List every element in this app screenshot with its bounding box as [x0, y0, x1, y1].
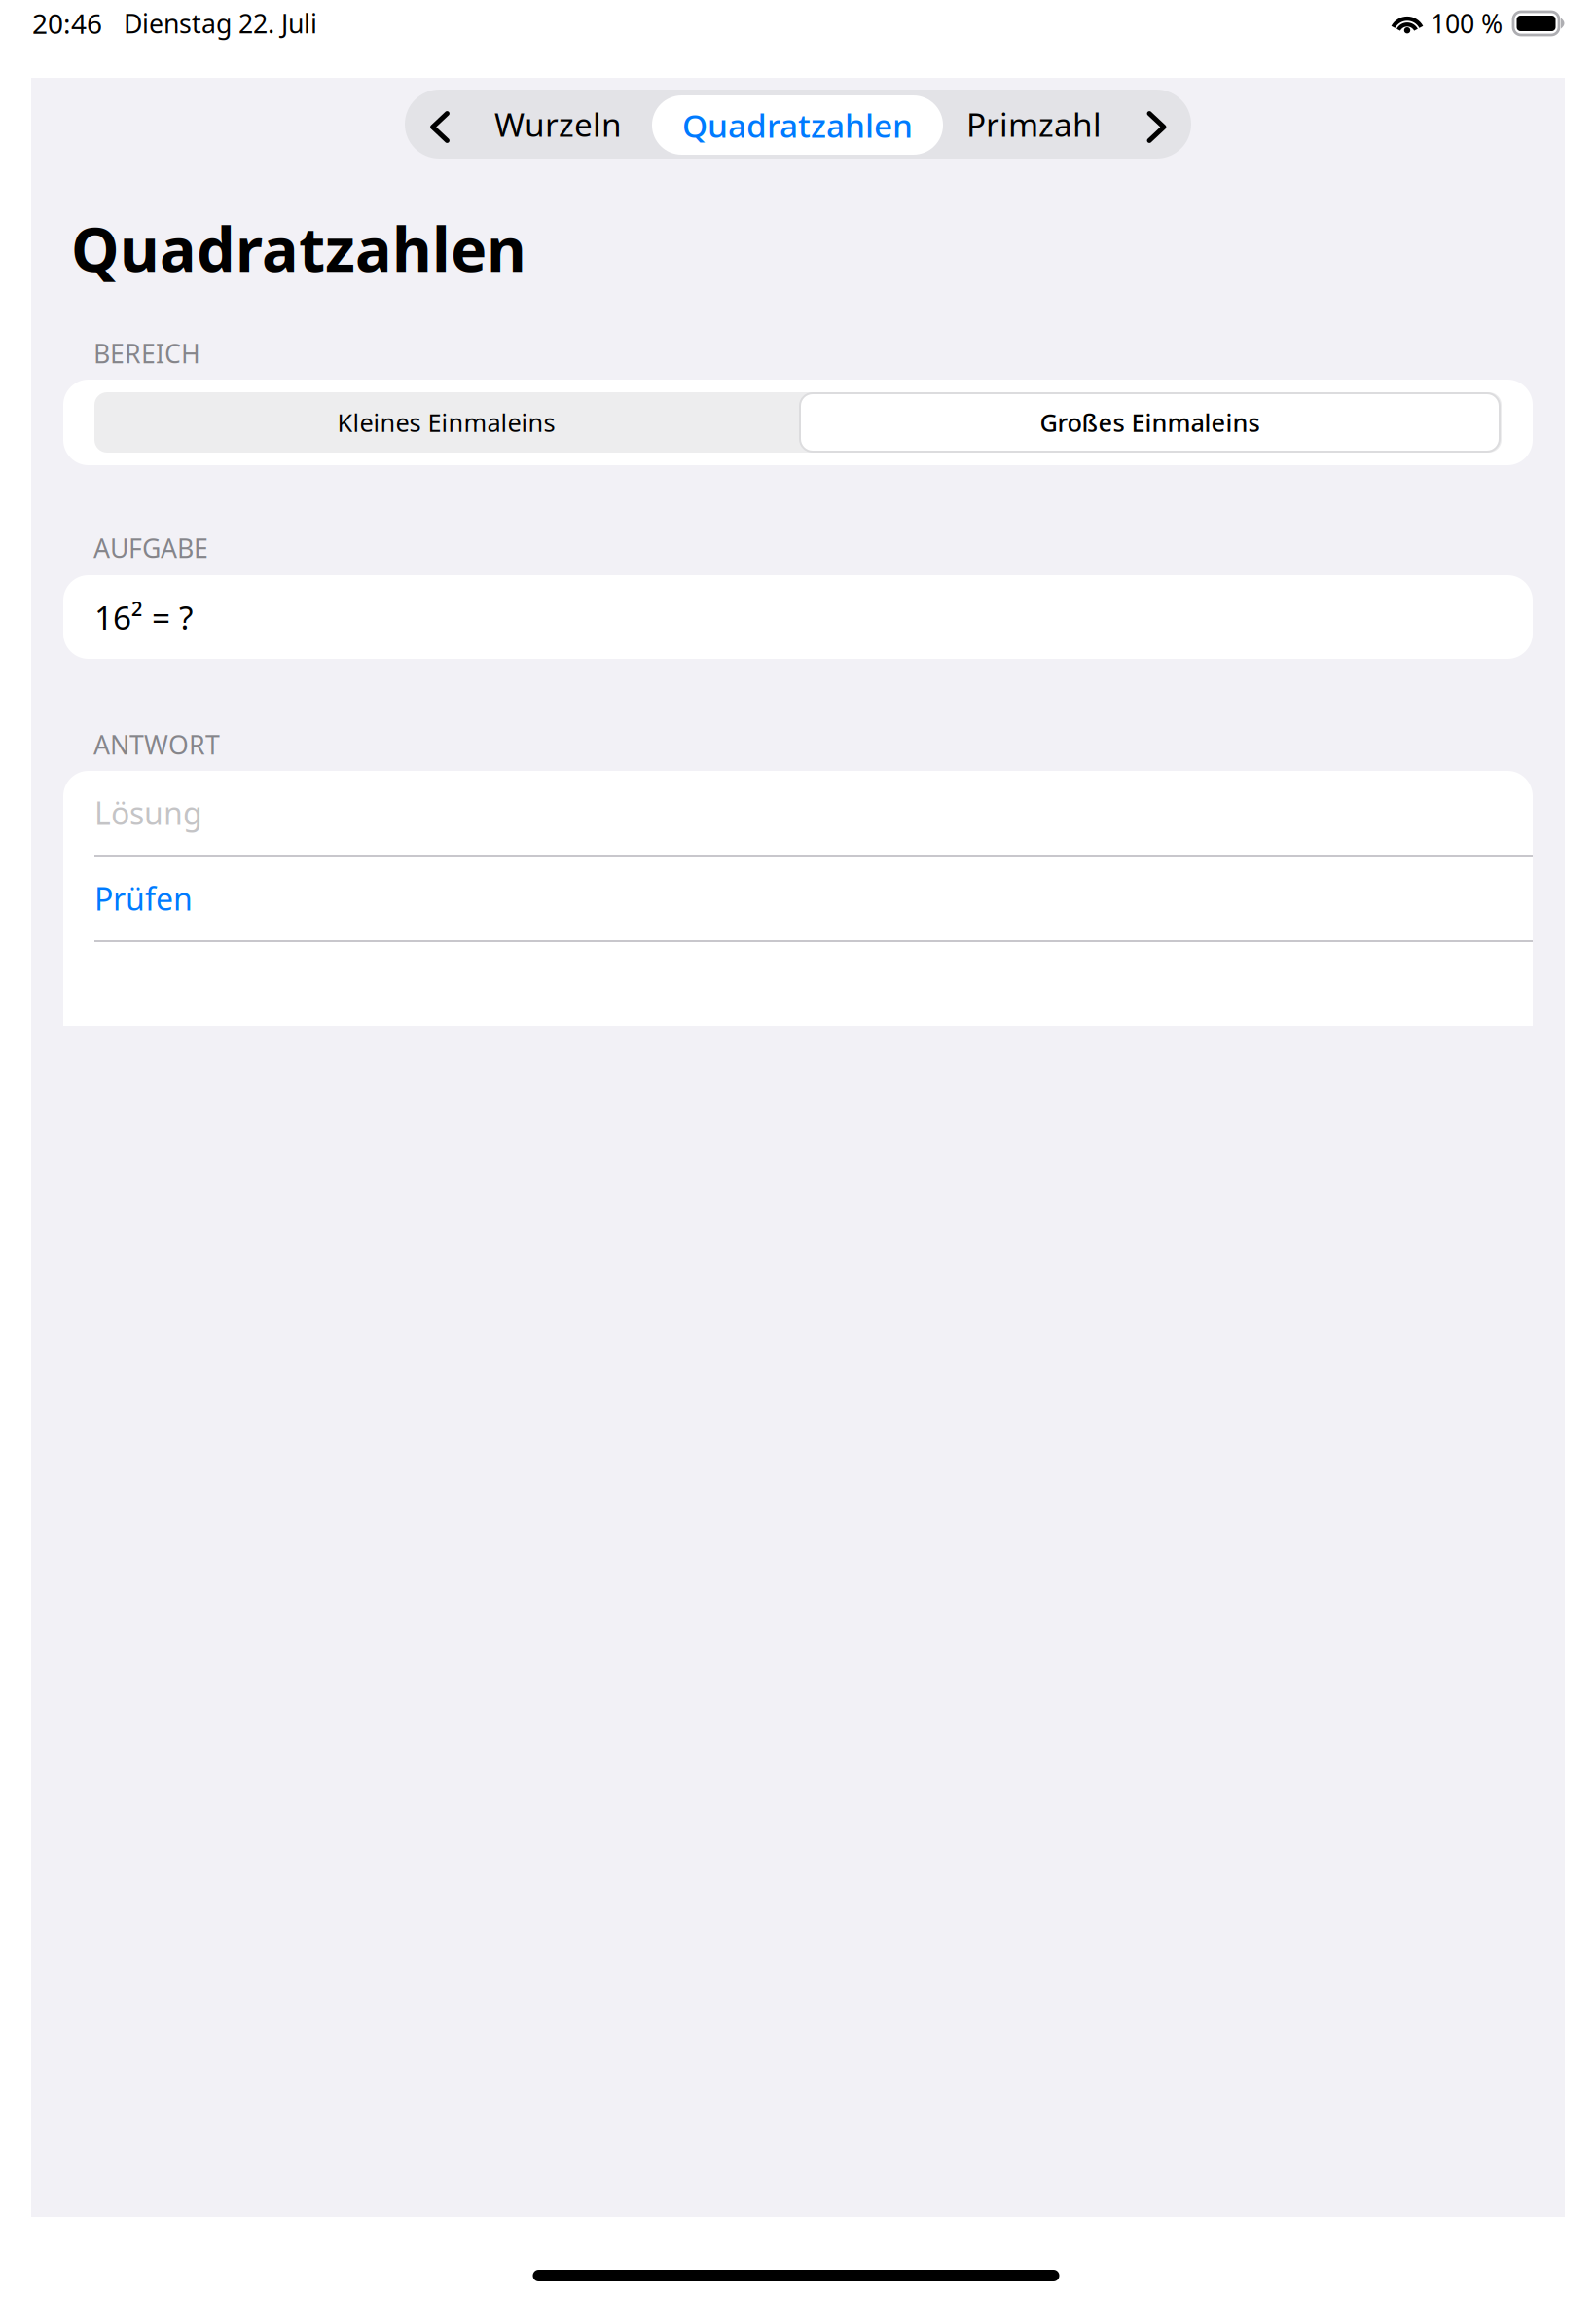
staticText: Quadratzahlen [682, 104, 913, 147]
button[interactable]: Kleines Einmaleins [94, 392, 798, 453]
button[interactable]: Vorheriges Thema [405, 90, 471, 159]
staticText: AUFGABE [93, 531, 208, 565]
staticText: Quadratzahlen [71, 208, 526, 289]
button[interactable]: Quadratzahlen [645, 90, 950, 159]
button[interactable]: Großes Einmaleins [798, 392, 1502, 453]
button[interactable]: Prüfen [63, 857, 1533, 940]
staticText: Lösung [94, 792, 202, 833]
staticText: Großes Einmaleins [1040, 406, 1260, 439]
button[interactable]: Nächstes Thema [1118, 90, 1191, 159]
staticText: Kleines Einmaleins [337, 406, 555, 439]
button[interactable]: Lösung eingeben [63, 771, 1533, 855]
staticText: 100 % [1431, 6, 1503, 41]
staticText: BEREICH [93, 336, 200, 371]
staticText: ANTWORT [93, 727, 220, 762]
staticText: Dienstag 22. Juli [124, 6, 317, 41]
staticText: Primzahl [966, 103, 1102, 146]
staticText: Wurzeln [494, 103, 622, 146]
staticText: 16² = ? [94, 596, 193, 639]
staticText: Prüfen [94, 878, 193, 919]
staticText: 20:46 [32, 5, 102, 41]
button[interactable]: Primzahl [950, 90, 1118, 159]
button[interactable]: Wurzeln [471, 90, 645, 159]
